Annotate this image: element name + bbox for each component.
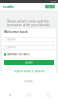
- staticText: Share what's new and the moments with yo…: [7, 19, 51, 27]
- staticText: Login: [25, 61, 33, 64]
- staticText: Sign Up: [45, 5, 55, 8]
- staticText: Trending ›: [24, 80, 34, 83]
- button[interactable]: Username: [4, 37, 54, 42]
- button[interactable]: Sign Up: [45, 5, 58, 8]
- button[interactable]: Forgotten account or password?: [4, 65, 54, 73]
- button[interactable]: scuttle: [0, 3, 14, 10]
- button[interactable]: Login: [4, 56, 54, 65]
- staticText: Forgotten account or password?: [13, 70, 44, 73]
- staticText: Remember this device: [7, 53, 29, 56]
- staticText: Welcome back: [4, 30, 28, 34]
- staticText: Username: [5, 38, 15, 41]
- button[interactable]: Recents: [39, 94, 58, 96]
- button[interactable]: Remember this device: [4, 50, 54, 56]
- button[interactable]: Back: [0, 93, 19, 96]
- button[interactable]: Home: [19, 94, 39, 96]
- button[interactable]: Trending ›: [24, 80, 34, 83]
- staticText: Password: [5, 46, 15, 49]
- staticText: scuttle: [3, 4, 14, 9]
- button[interactable]: Password: [4, 45, 54, 50]
